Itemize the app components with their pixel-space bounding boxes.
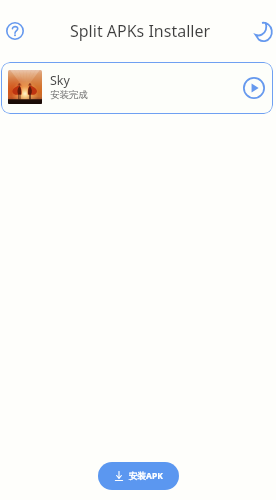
staticText: 安装APK	[129, 470, 163, 482]
button[interactable]: 安装APK	[98, 462, 179, 490]
button[interactable]: Install	[239, 73, 269, 103]
staticText: Split APKs Installer	[70, 20, 211, 42]
staticText: Sky	[50, 72, 70, 89]
staticText: 安装完成	[50, 89, 88, 101]
button[interactable]: Help	[0, 0, 30, 62]
button[interactable]: Sky	[1, 62, 273, 114]
button[interactable]: Toggle dark mode	[251, 0, 276, 62]
